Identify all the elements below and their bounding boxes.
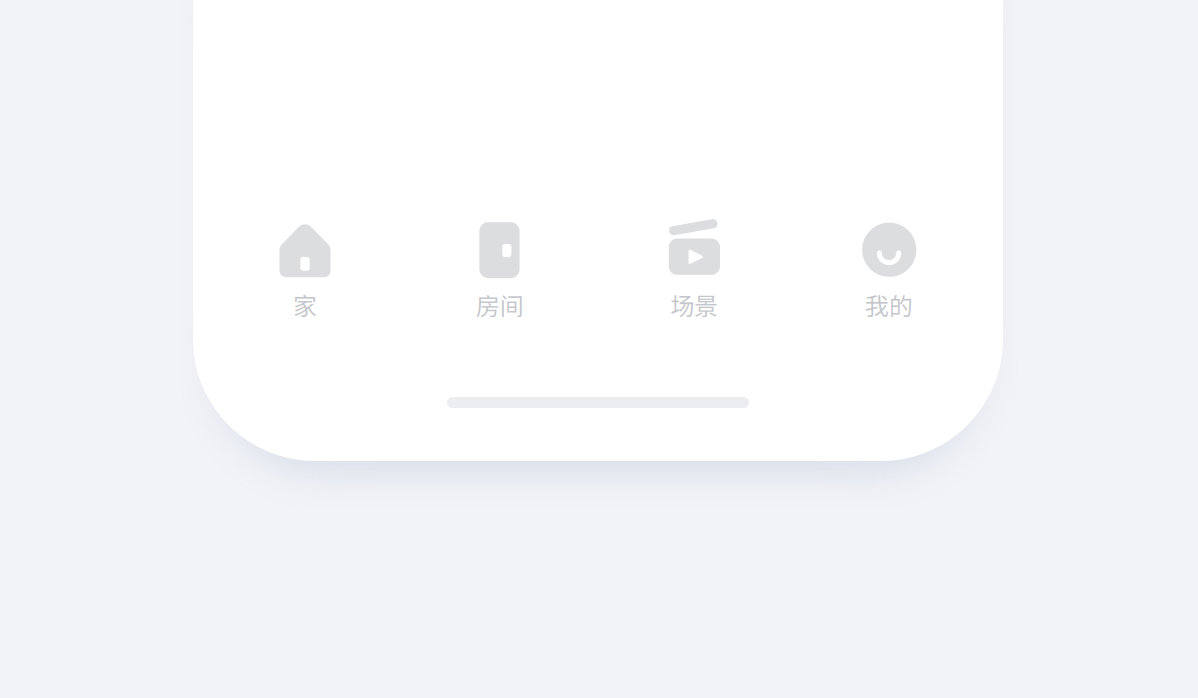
button[interactable]: 家 (208, 219, 402, 322)
button[interactable]: 场景 (597, 219, 792, 322)
staticText: 场景 (670, 287, 718, 322)
staticText: 房间 (476, 287, 524, 322)
button[interactable]: 房间 (402, 219, 597, 322)
staticText: 家 (293, 287, 317, 322)
staticText: 我的 (865, 287, 913, 322)
button[interactable]: 我的 (792, 219, 986, 322)
